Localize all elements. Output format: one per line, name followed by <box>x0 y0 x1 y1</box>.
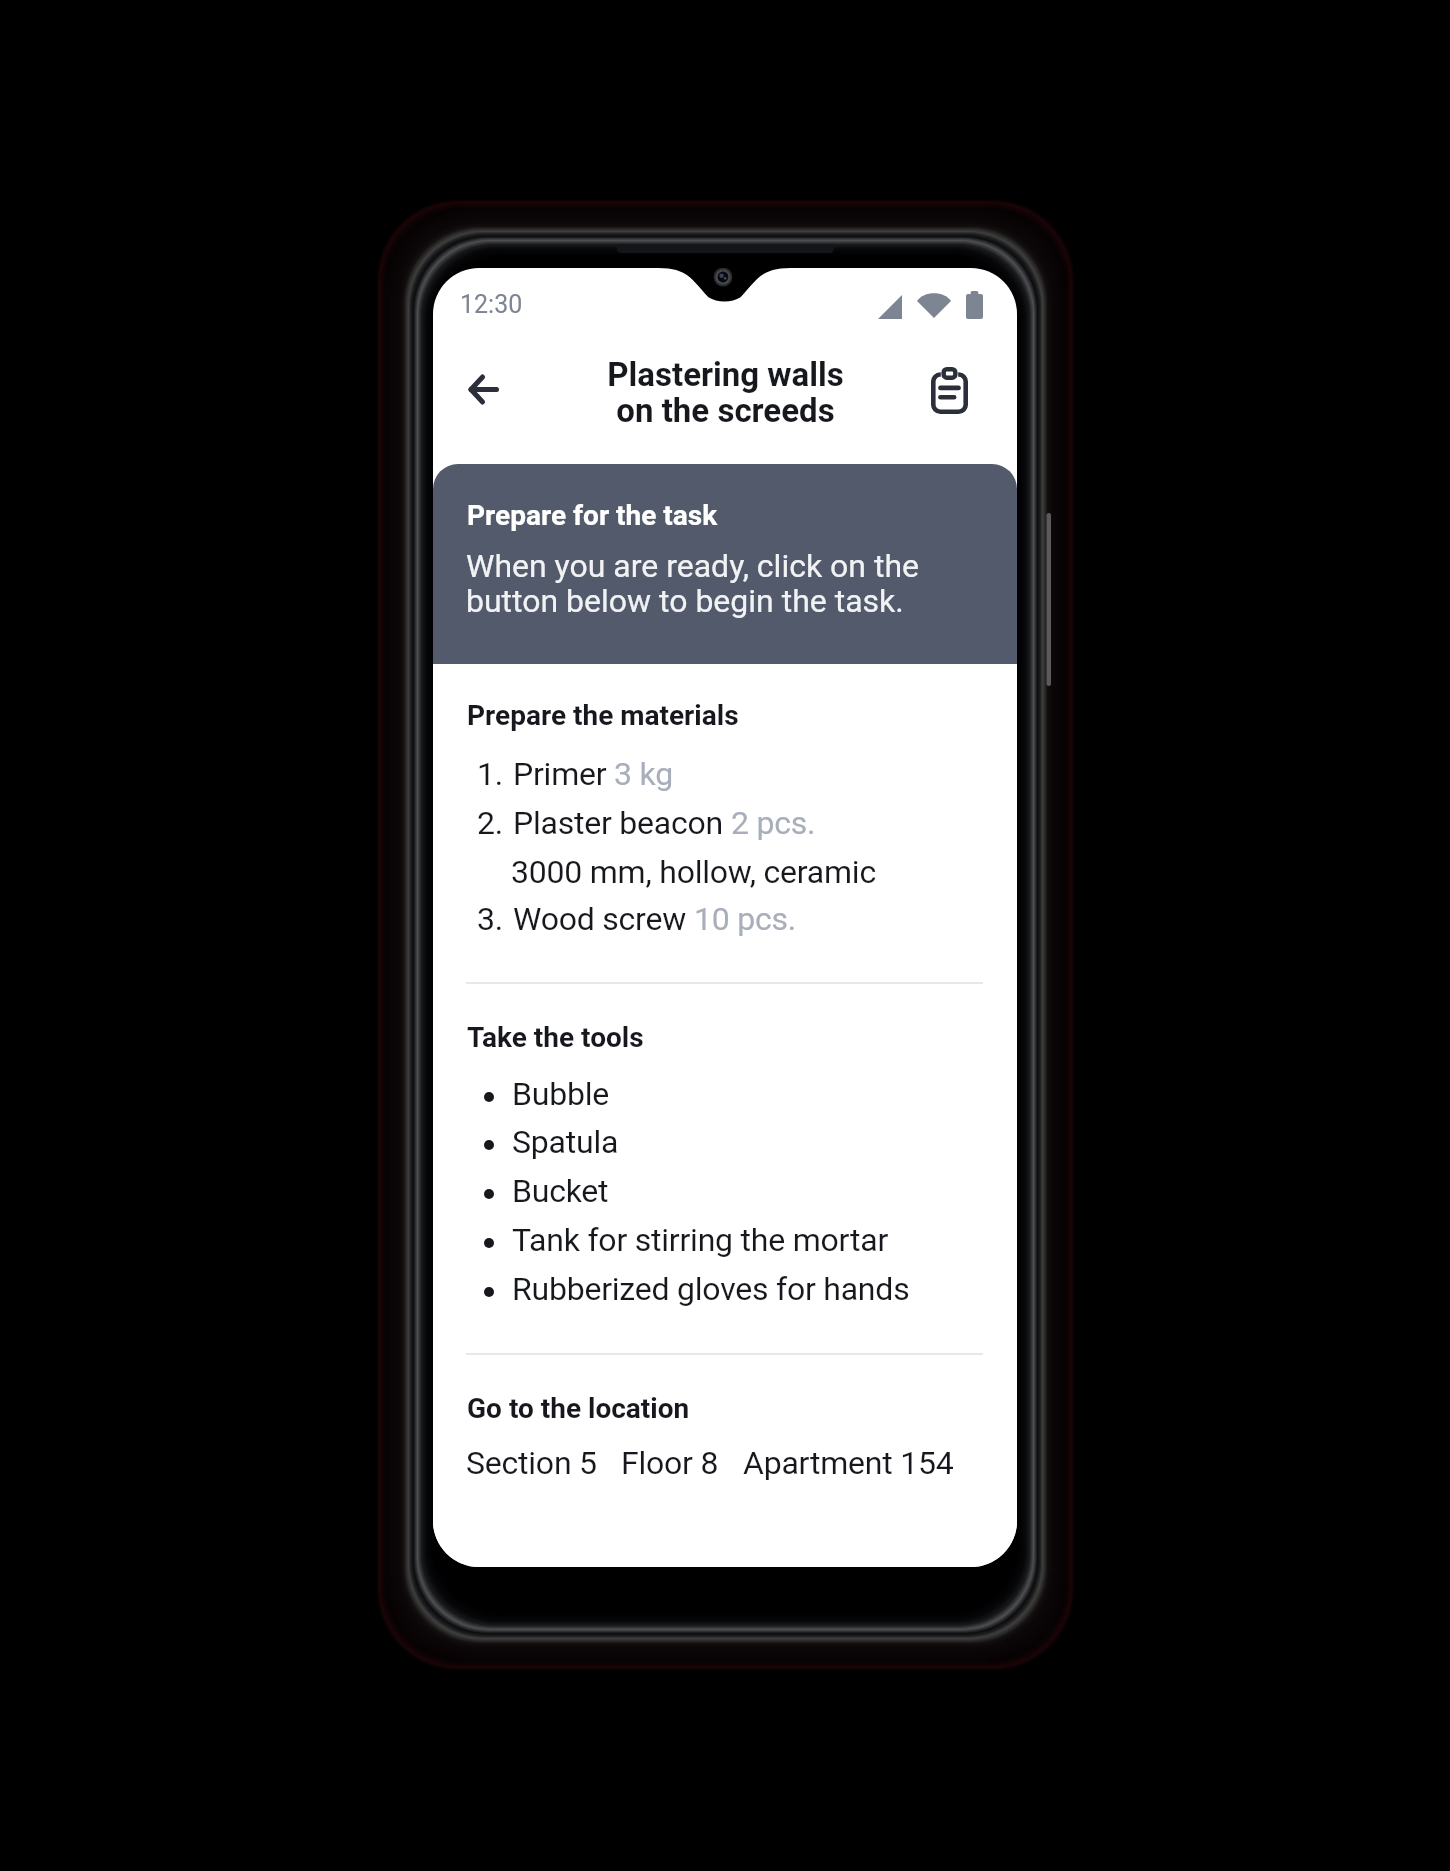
staticText: 12:30 <box>460 290 523 319</box>
button[interactable]: 2. <box>477 804 816 842</box>
button[interactable]: Task checklist <box>915 356 984 425</box>
staticText: 3. <box>477 900 513 938</box>
button[interactable]: Tank for stirring the mortar <box>484 1221 889 1259</box>
staticText: 1. <box>477 755 513 793</box>
staticText: Plaster beacon <box>513 804 724 842</box>
staticText: 10 pcs. <box>694 900 797 938</box>
staticText: 2 pcs. <box>731 804 816 842</box>
staticText: 2. <box>477 804 513 842</box>
staticText: Apartment 154 <box>743 1444 954 1482</box>
button[interactable]: Bucket <box>484 1172 609 1210</box>
staticText: 3 kg <box>614 755 673 793</box>
staticText: Rubberized gloves for hands <box>512 1270 910 1308</box>
staticText: Floor 8 <box>621 1444 719 1482</box>
button[interactable]: Rubberized gloves for hands <box>484 1270 910 1308</box>
button[interactable]: Spatula <box>484 1123 619 1161</box>
staticText: Section 5 <box>466 1444 597 1482</box>
staticText: Bucket <box>512 1172 609 1210</box>
button[interactable]: Section 5 <box>466 1444 954 1482</box>
staticText: When you are ready, click on the button … <box>466 547 919 620</box>
staticText: Prepare the materials <box>467 699 739 732</box>
staticText: Plastering walls on the screeds <box>607 355 844 430</box>
staticText: Primer <box>513 755 607 793</box>
button[interactable]: 3. <box>477 900 797 938</box>
staticText: Bubble <box>512 1075 609 1113</box>
staticText: Prepare for the task <box>467 499 718 532</box>
button[interactable]: Back <box>450 356 516 422</box>
staticText: 3000 mm, hollow, ceramic <box>511 853 876 891</box>
button[interactable]: Prepare for the task <box>433 464 1017 664</box>
staticText: Tank for stirring the mortar <box>512 1221 889 1259</box>
staticText: Spatula <box>512 1123 619 1161</box>
button[interactable]: 1. <box>477 755 673 793</box>
staticText: Wood screw <box>513 900 687 938</box>
staticText: Go to the location <box>467 1392 690 1425</box>
button[interactable]: Bubble <box>484 1075 609 1113</box>
staticText: Take the tools <box>467 1021 644 1054</box>
